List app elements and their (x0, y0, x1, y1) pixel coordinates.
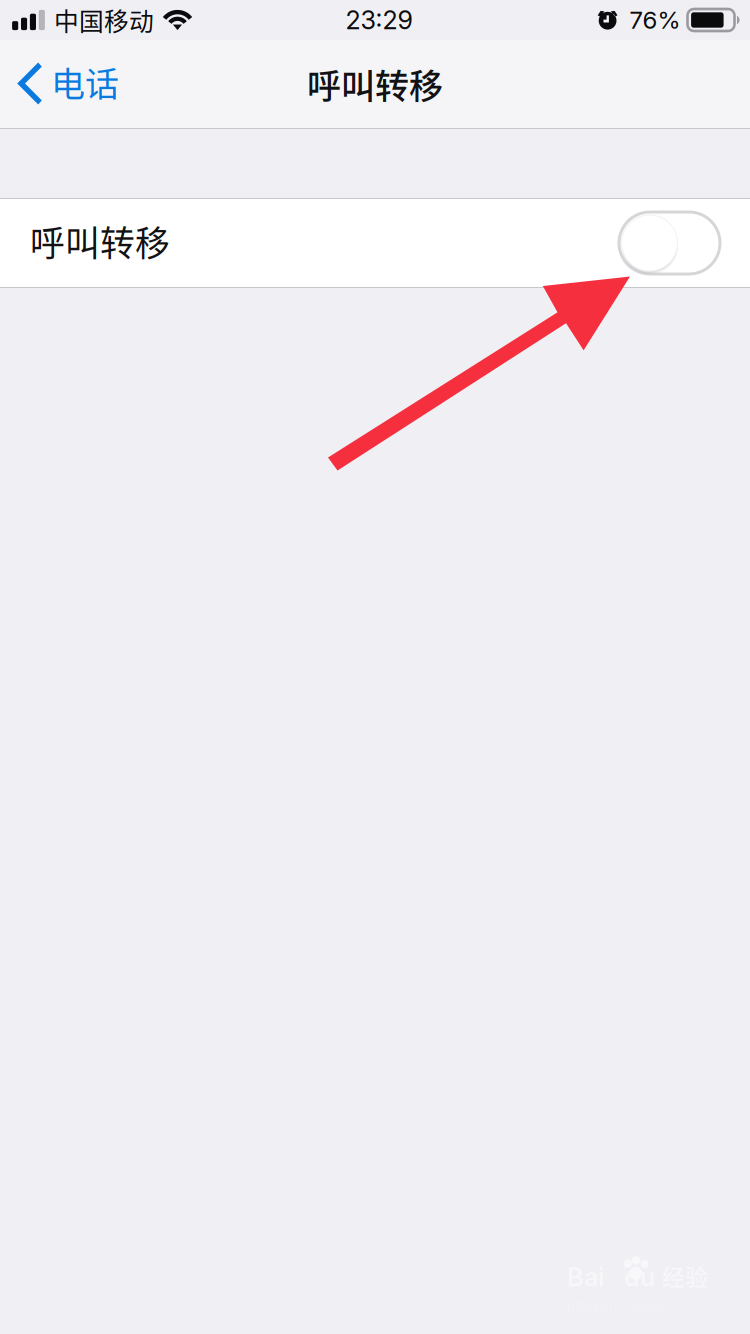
button[interactable]: 电话 (0, 40, 200, 128)
staticText: 呼叫转移 (307, 59, 443, 109)
staticText: Bai (567, 1262, 604, 1292)
staticText: du (624, 1262, 655, 1292)
staticText: 经验 (662, 1259, 708, 1292)
staticText: 76% (629, 5, 680, 35)
staticText: 23:29 (345, 5, 412, 35)
button[interactable]: 呼叫转移 (0, 199, 750, 287)
staticText: 电话 (51, 57, 119, 107)
staticText: 中国移动 (54, 2, 154, 38)
staticText: 呼叫转移 (30, 216, 170, 266)
